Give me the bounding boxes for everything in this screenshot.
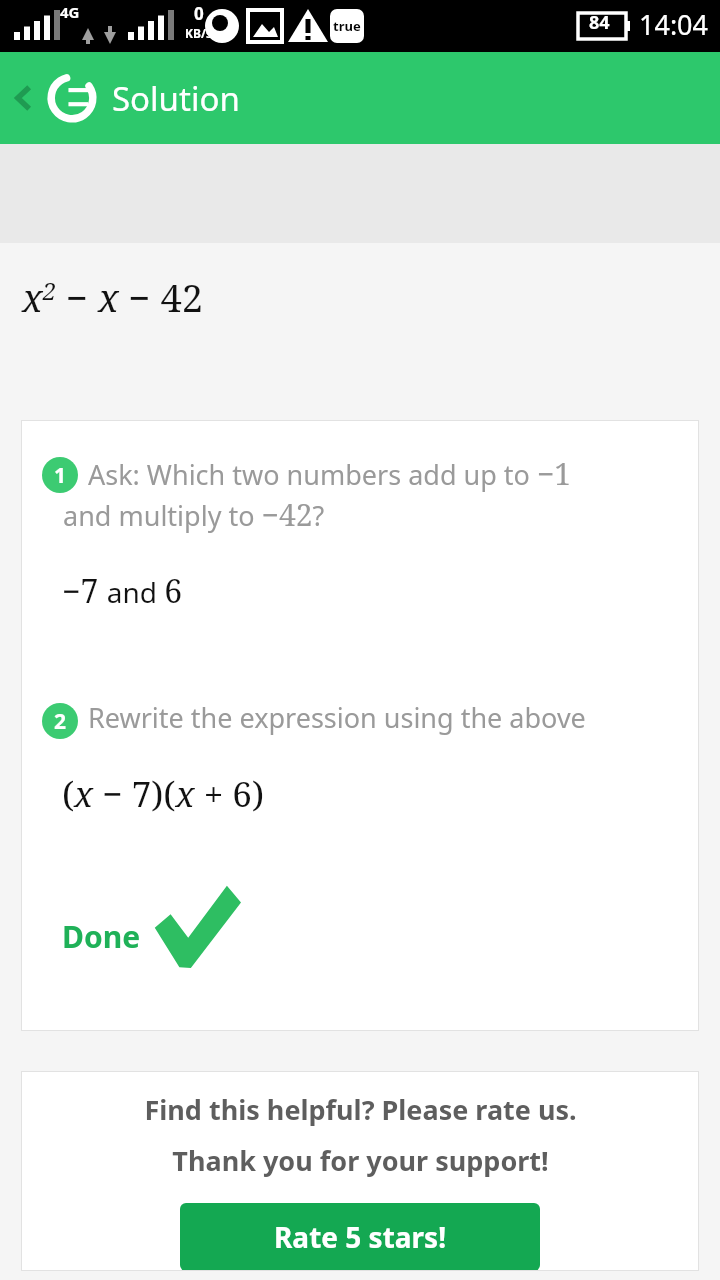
staticText: 84 <box>589 10 610 35</box>
staticText: 4G <box>60 2 80 22</box>
staticText: Solution <box>112 76 240 121</box>
staticText: 14:04 <box>639 6 709 43</box>
staticText: 2 <box>54 707 67 736</box>
staticText: KB/s <box>185 25 212 41</box>
button[interactable]: Rate 5 stars! <box>180 1203 540 1271</box>
staticText: −7 and 6 <box>62 569 183 613</box>
staticText: 0 <box>194 2 204 25</box>
staticText: Ask: Which two numbers add up to −1 <box>88 453 572 494</box>
staticText: Thank you for your support! <box>172 1142 549 1179</box>
staticText: x2 − x − 42 <box>22 271 203 323</box>
staticText: true <box>333 17 361 35</box>
staticText: and multiply to −42? <box>63 494 325 535</box>
staticText: (x − 7)(x + 6) <box>62 770 265 818</box>
button[interactable]: Back <box>0 52 46 144</box>
staticText: Done <box>62 916 141 957</box>
staticText: Find this helpful? Please rate us. <box>144 1091 577 1128</box>
staticText: Rate 5 stars! <box>274 1218 447 1256</box>
button[interactable]: 1 <box>21 420 699 1031</box>
staticText: 1 <box>54 461 67 490</box>
staticText: Rewrite the expression using the above <box>88 699 586 736</box>
